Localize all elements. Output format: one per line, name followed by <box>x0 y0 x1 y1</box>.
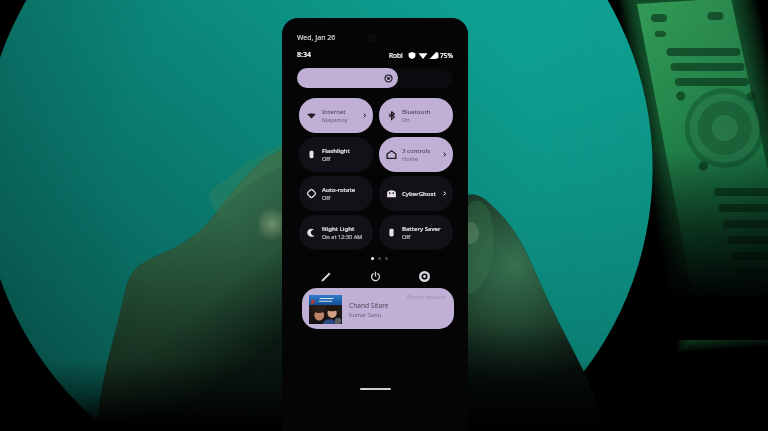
button[interactable]: Brightness <box>297 68 453 88</box>
staticText: Battery Saver <box>402 225 441 233</box>
staticText: Off <box>322 194 331 202</box>
button[interactable]: Internet <box>299 98 373 133</box>
staticText: Bluetooth <box>402 108 431 116</box>
button[interactable]: Chand Sitare <box>302 288 454 329</box>
staticText: 3 controls <box>402 147 431 155</box>
staticText: On at 12:30 AM <box>322 233 363 241</box>
staticText: Auto-rotate <box>322 186 356 194</box>
staticText: Off <box>322 155 331 163</box>
button[interactable]: CyberGhost <box>379 176 453 211</box>
staticText: Chand Sitare <box>349 301 389 310</box>
button[interactable]: Settings <box>418 270 431 283</box>
staticText: Mayamoy <box>322 116 348 124</box>
staticText: Home <box>402 155 418 163</box>
staticText: Off <box>402 233 411 241</box>
staticText: On <box>402 116 410 124</box>
button[interactable]: Flashlight <box>299 137 373 172</box>
staticText: CyberGhost <box>402 190 436 198</box>
button[interactable]: 3 controls <box>379 137 453 172</box>
button[interactable]: Bluetooth <box>379 98 453 133</box>
staticText: Kumar Sanu <box>349 311 382 319</box>
staticText: Flashlight <box>322 147 350 155</box>
button[interactable]: Power <box>369 270 382 283</box>
button[interactable]: Battery Saver <box>379 215 453 250</box>
staticText: Night Light <box>322 225 355 233</box>
staticText: Phone speaker <box>407 293 446 300</box>
staticText: Internet <box>322 108 346 116</box>
staticText: Robi <box>389 51 403 60</box>
button[interactable]: Edit tiles <box>319 270 332 283</box>
staticText: Wed, Jan 26 <box>297 33 336 43</box>
button[interactable]: Auto-rotate <box>299 176 373 211</box>
button[interactable]: Night Light <box>299 215 373 250</box>
staticText: 8:34 <box>297 50 311 60</box>
staticText: 75% <box>440 51 453 60</box>
